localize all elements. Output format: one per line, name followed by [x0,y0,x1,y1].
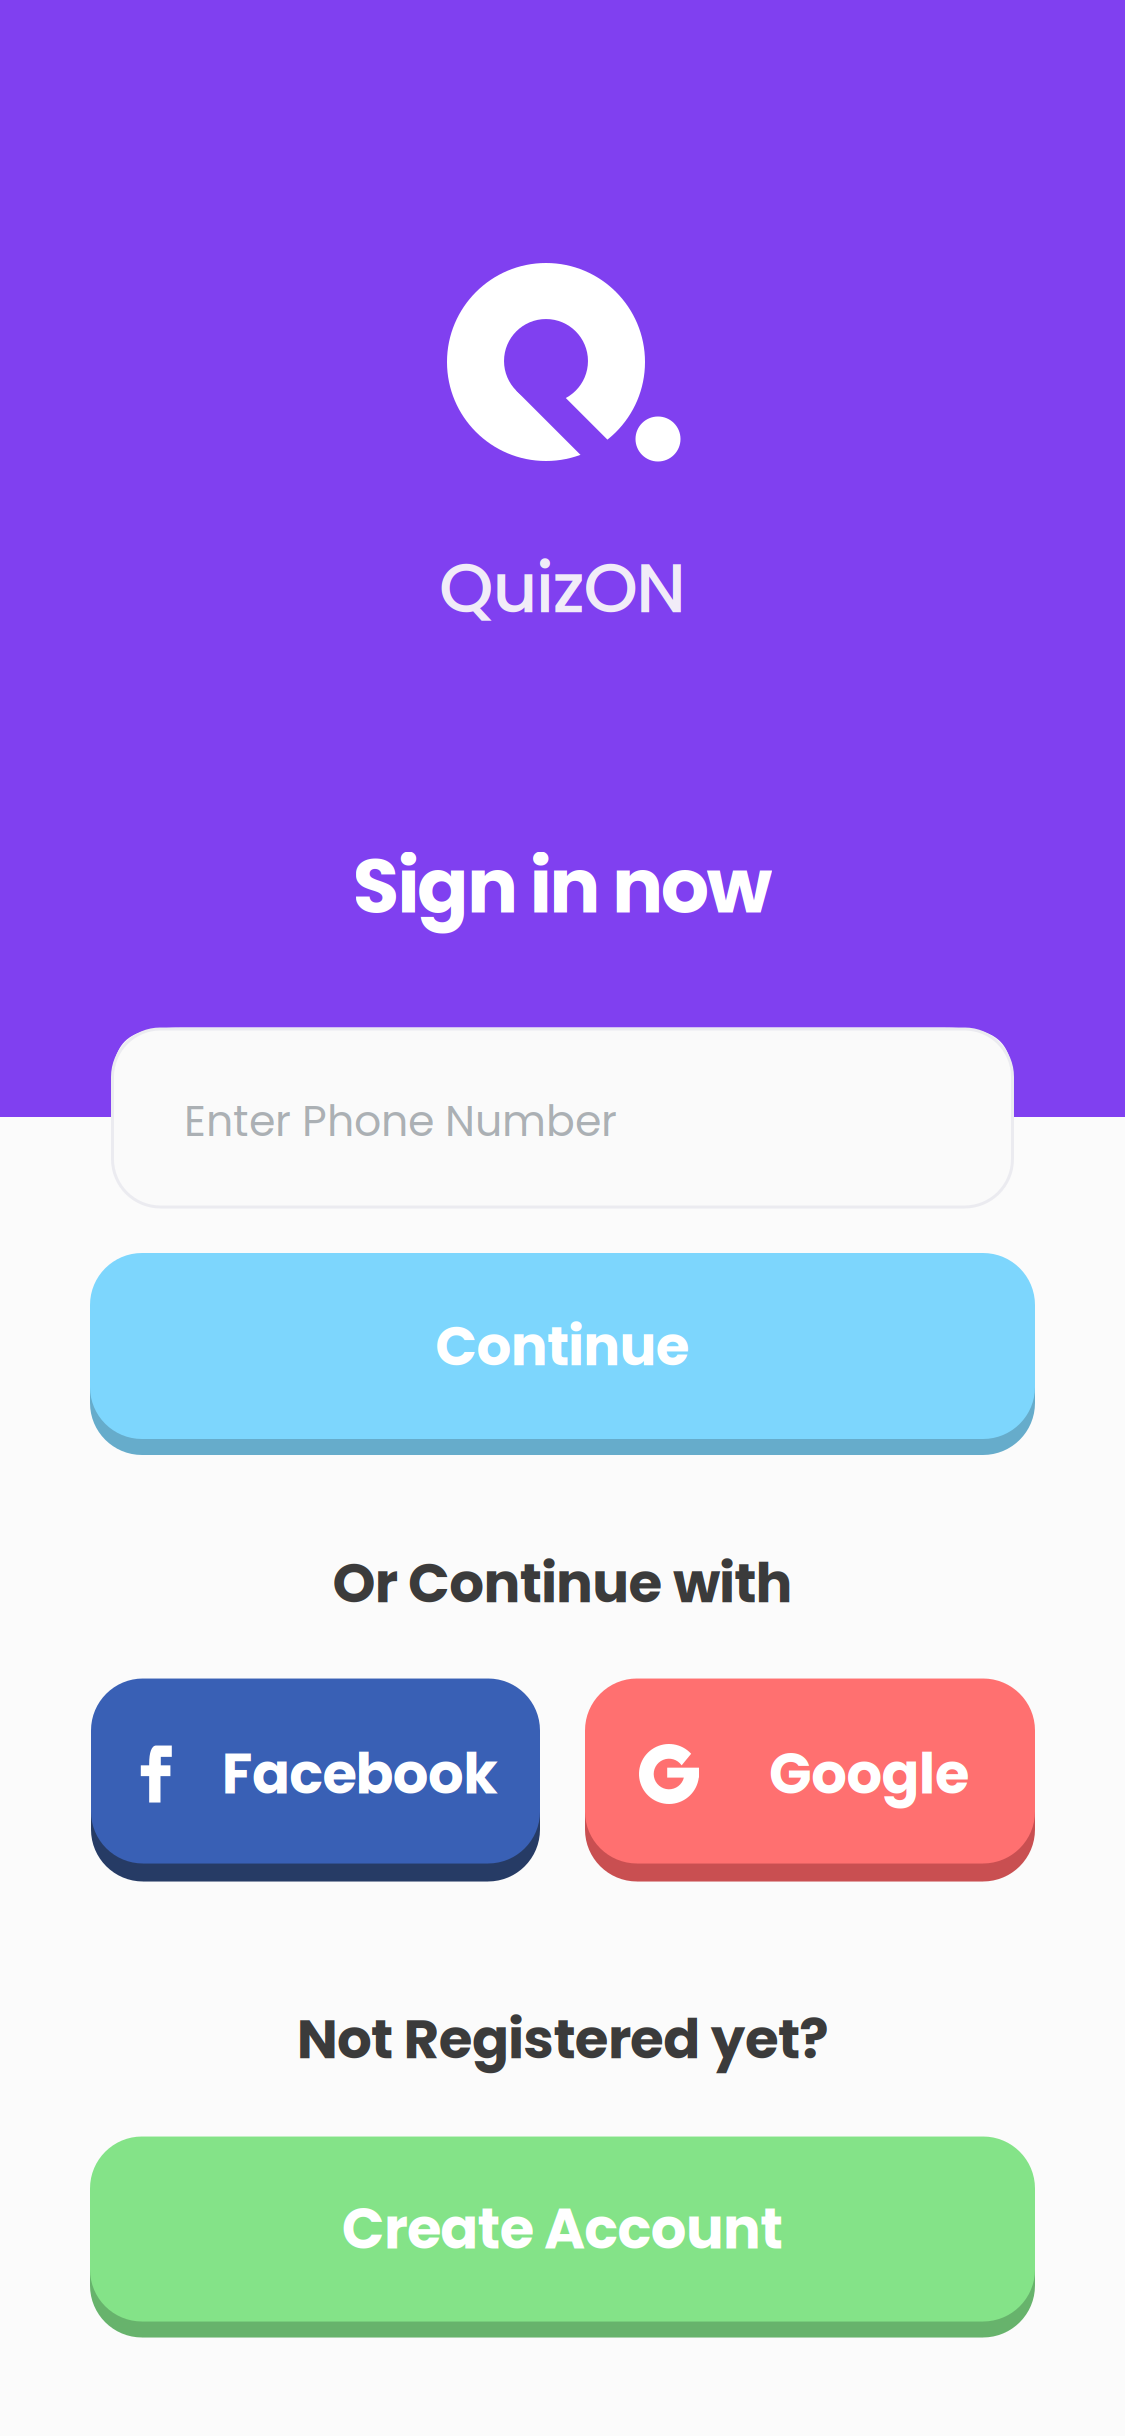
staticText: Enter Phone Number [184,1091,617,1151]
staticText: Create Account [342,2190,783,2268]
staticText: Sign in now [352,833,772,939]
staticText: Google [769,1735,969,1813]
staticText: Not Registered yet? [297,2001,828,2077]
staticText: Or Continue with [332,1545,792,1621]
button[interactable]: Create Account [90,2136,1035,2337]
button[interactable]: Enter Phone Number [111,1027,1014,1208]
staticText: Facebook [222,1735,498,1813]
button[interactable]: Facebook [91,1678,540,1881]
staticText: QuizON [439,539,686,637]
staticText: Continue [435,1308,690,1384]
button[interactable]: Continue [90,1253,1035,1455]
button[interactable]: Google [585,1678,1035,1881]
